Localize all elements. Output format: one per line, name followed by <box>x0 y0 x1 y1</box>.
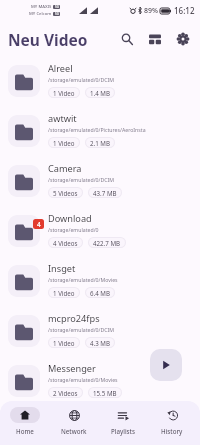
button[interactable]: Playlists <box>98 401 147 445</box>
staticText: 5G <box>55 12 59 16</box>
staticText: /storage/emulated/0/Movies <box>48 376 118 383</box>
button[interactable]: Insget <box>0 257 200 307</box>
button[interactable]: Network <box>49 401 98 445</box>
button[interactable]: History <box>147 401 196 445</box>
button[interactable]: Camera <box>0 157 200 207</box>
button[interactable]: Messenger <box>0 357 200 401</box>
staticText: Insget <box>48 262 76 275</box>
button[interactable]: Settings <box>171 27 195 51</box>
staticText: MY MAXIS <box>31 4 52 10</box>
staticText: 4 <box>37 220 41 229</box>
staticText: Network <box>61 427 87 435</box>
staticText: /storage/emulated/0/DCIM <box>48 326 114 333</box>
button[interactable]: Search <box>115 27 139 51</box>
staticText: Download <box>48 212 92 225</box>
staticText: mcpro24fps <box>48 312 100 325</box>
button[interactable]: 4 <box>0 207 200 257</box>
staticText: 4.3 MB <box>90 339 110 347</box>
staticText: 1 Video <box>53 289 75 297</box>
staticText: Messenger <box>48 362 96 375</box>
staticText: 1 Video <box>53 339 75 347</box>
staticText: /storage/emulated/0/DCIM <box>48 176 114 183</box>
staticText: MY Celcom <box>29 11 52 17</box>
staticText: Camera <box>48 162 82 175</box>
staticText: Alreel <box>48 62 73 75</box>
staticText: 5G <box>55 5 59 9</box>
staticText: /storage/emulated/0/Movies <box>48 276 118 283</box>
staticText: 16:12 <box>174 5 195 16</box>
staticText: 1 Video <box>53 139 75 147</box>
staticText: 89% <box>144 6 158 16</box>
staticText: Playlists <box>111 427 135 435</box>
staticText: 6.4 MB <box>90 289 110 297</box>
staticText: awtwit <box>48 112 77 125</box>
staticText: History <box>161 427 183 435</box>
button[interactable]: Change layout <box>143 27 167 51</box>
staticText: 15.5 MB <box>93 389 117 397</box>
button[interactable]: Alreel <box>0 57 200 107</box>
staticText: 5 Videos <box>53 189 78 197</box>
staticText: 1.4 MB <box>90 89 110 97</box>
staticText: 4 Videos <box>53 239 78 247</box>
staticText: 43.7 MB <box>93 189 117 197</box>
staticText: Home <box>16 427 34 435</box>
button[interactable]: Play all <box>150 349 182 381</box>
staticText: /storage/emulated/0/Pictures/AeroInsta <box>48 126 146 133</box>
button[interactable]: mcpro24fps <box>0 307 200 357</box>
staticText: /storage/emulated/0 <box>48 226 99 233</box>
staticText: 2 Videos <box>53 389 78 397</box>
button[interactable]: Home <box>1 401 49 445</box>
button[interactable]: awtwit <box>0 107 200 157</box>
staticText: 2.1 MB <box>90 139 110 147</box>
staticText: /storage/emulated/0/DCIM <box>48 76 114 83</box>
staticText: Neu Video <box>8 29 88 50</box>
staticText: 422.7 MB <box>93 239 121 247</box>
staticText: 1 Video <box>53 89 75 97</box>
